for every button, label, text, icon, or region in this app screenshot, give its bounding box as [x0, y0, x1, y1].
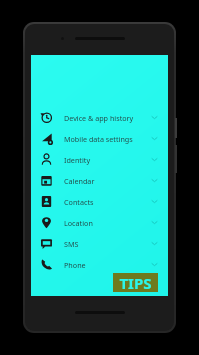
staticText: Identity — [64, 155, 91, 165]
staticText: Location — [64, 218, 93, 228]
staticText: TIPS — [119, 273, 152, 292]
button[interactable]: Phone — [31, 254, 168, 275]
button[interactable]: Location — [31, 212, 168, 233]
staticText: SMS — [64, 239, 79, 249]
button[interactable]: Contacts — [31, 191, 168, 212]
staticText: Device & app history — [64, 113, 134, 123]
staticText: Calendar — [64, 176, 95, 186]
button[interactable]: Identity — [31, 149, 168, 170]
button[interactable]: Device & app history — [31, 107, 168, 128]
staticText: Contacts — [64, 197, 94, 207]
button[interactable]: Mobile data settings — [31, 128, 168, 149]
staticText: Phone — [64, 260, 86, 270]
button[interactable]: SMS — [31, 233, 168, 254]
staticText: Mobile data settings — [64, 134, 133, 144]
button[interactable]: TIPS — [113, 273, 158, 292]
button[interactable]: Calendar — [31, 170, 168, 191]
